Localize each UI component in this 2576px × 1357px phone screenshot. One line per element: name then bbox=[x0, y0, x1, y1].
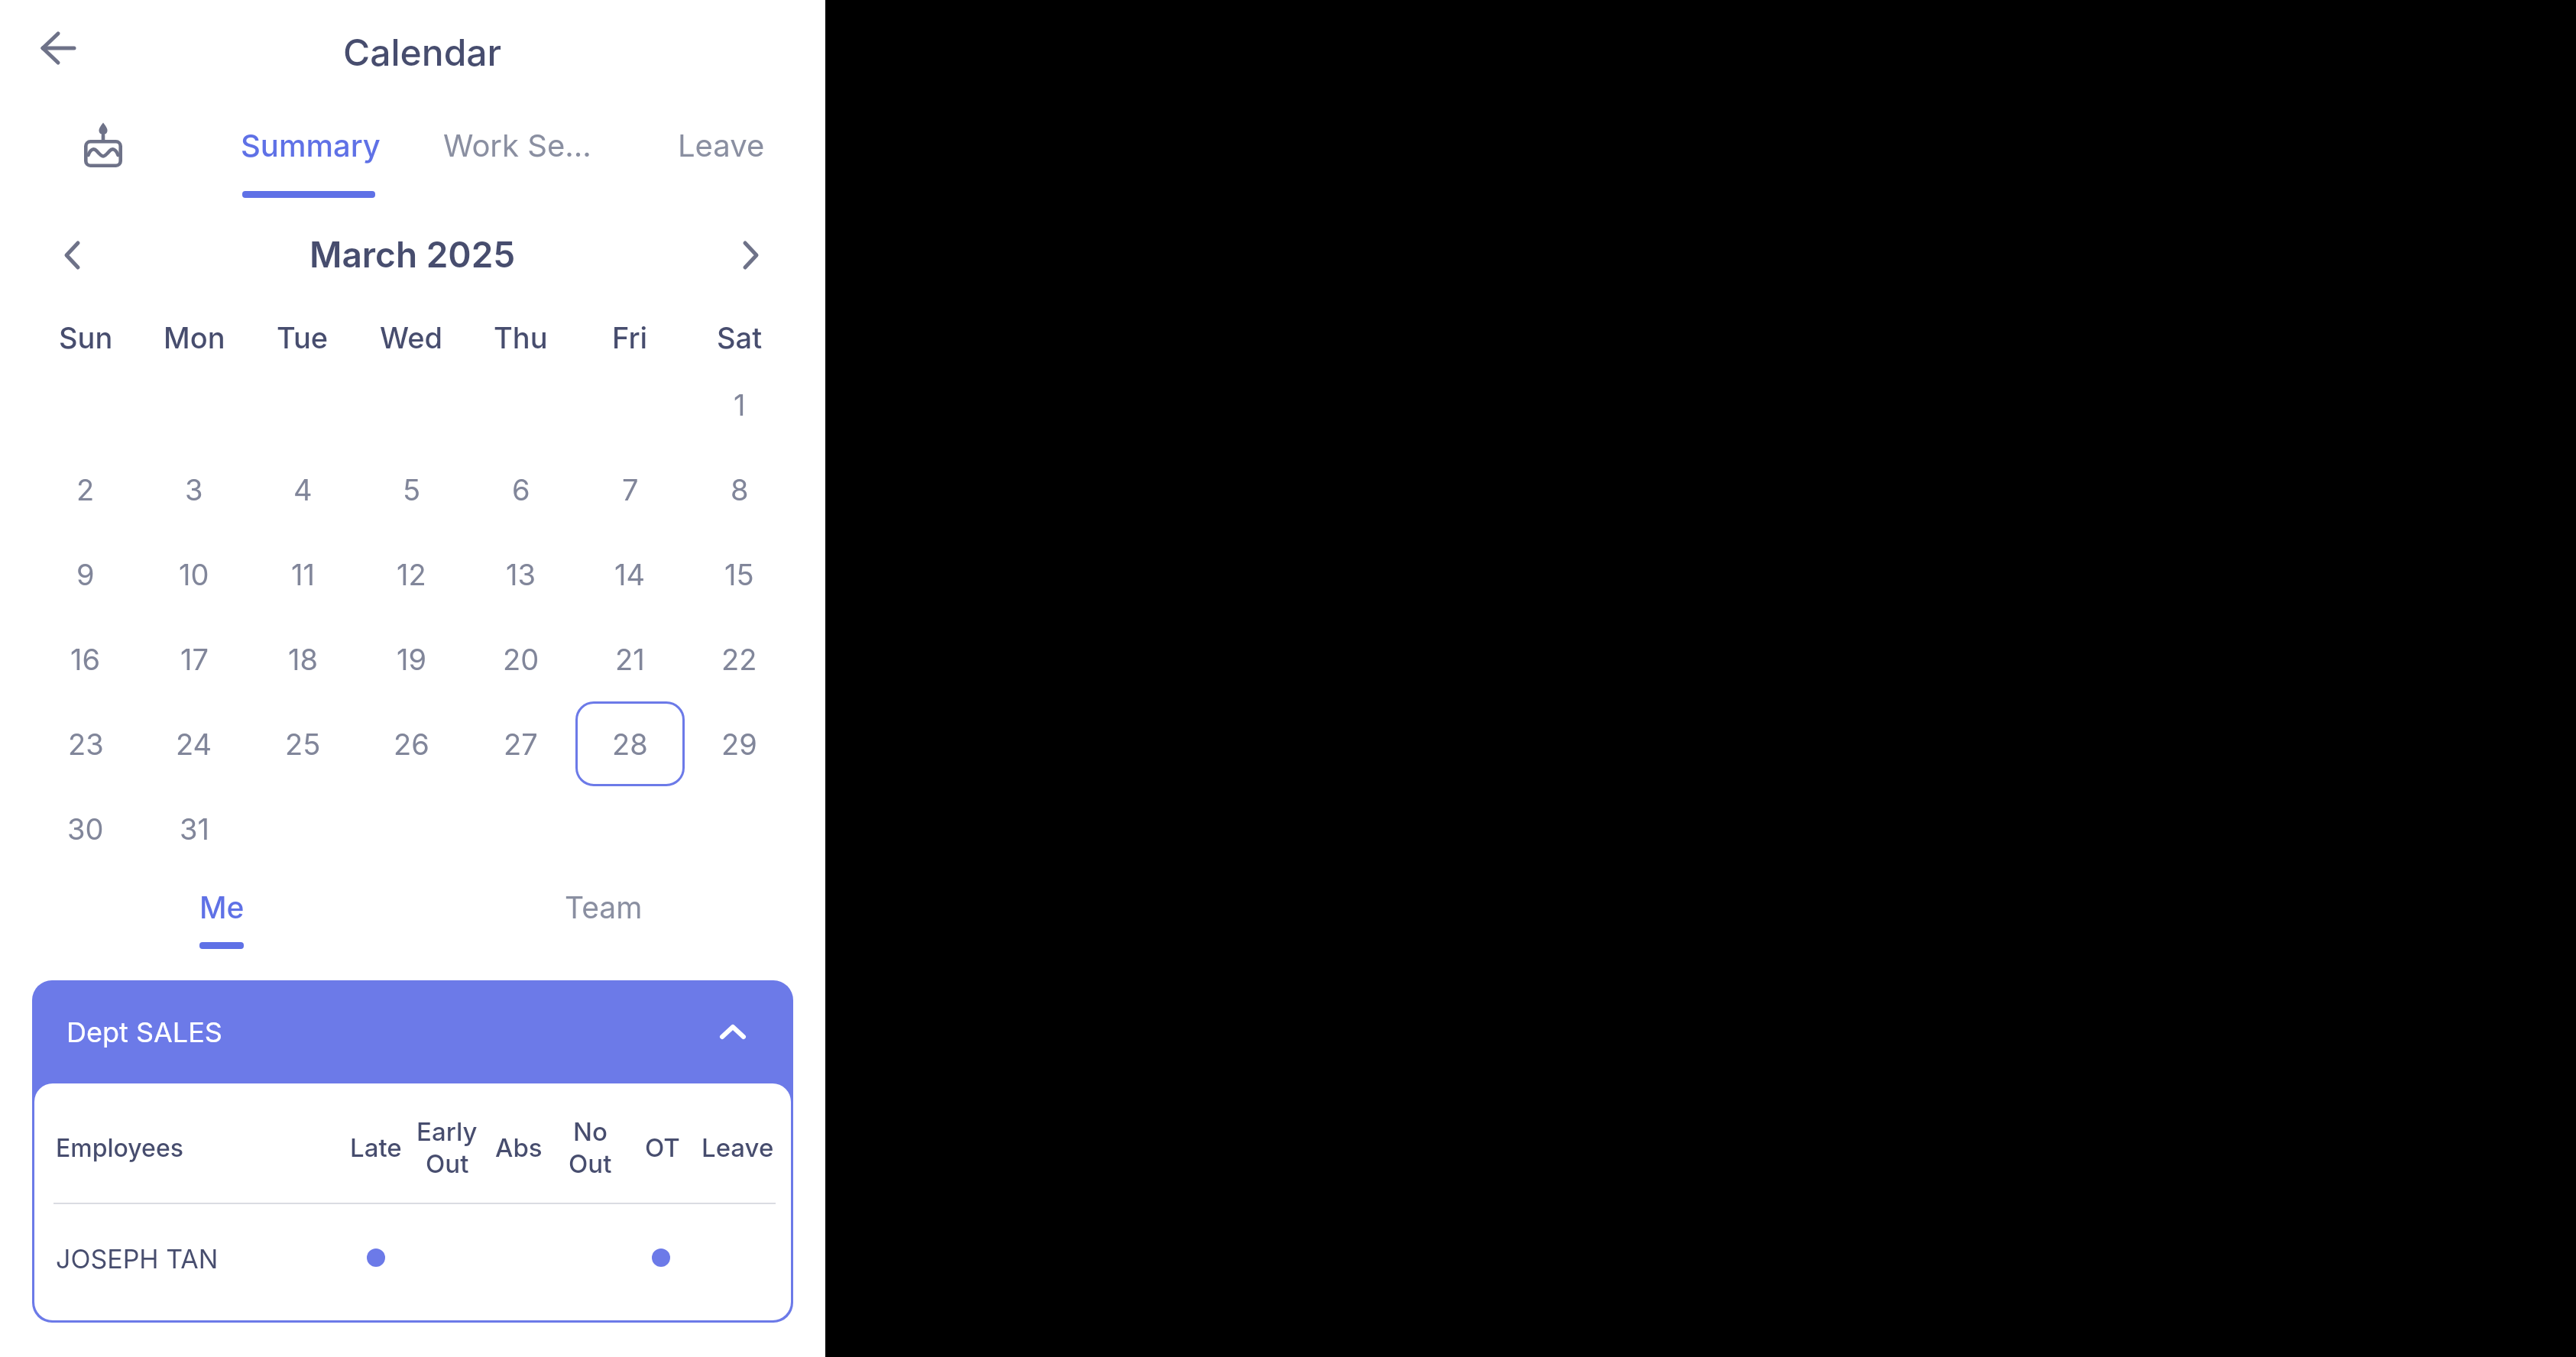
button[interactable]: 11 bbox=[248, 532, 357, 617]
button[interactable]: Team bbox=[508, 884, 699, 930]
staticText: Leave bbox=[702, 1132, 774, 1163]
button[interactable]: 29 bbox=[685, 701, 794, 786]
staticText: 12 bbox=[397, 557, 426, 592]
button[interactable] bbox=[49, 232, 95, 278]
staticText: 13 bbox=[506, 557, 536, 592]
staticText: 27 bbox=[504, 727, 538, 762]
button[interactable]: 21 bbox=[575, 617, 685, 701]
staticText: 30 bbox=[67, 811, 104, 847]
staticText: 20 bbox=[503, 642, 540, 677]
button[interactable]: JOSEPH TAN bbox=[37, 1223, 789, 1295]
staticText: 21 bbox=[615, 642, 645, 677]
button[interactable]: 24 bbox=[140, 701, 248, 786]
staticText: 1 bbox=[734, 387, 746, 423]
button[interactable]: 13 bbox=[466, 532, 575, 617]
staticText: 24 bbox=[176, 727, 212, 762]
staticText: OT bbox=[645, 1132, 680, 1163]
button[interactable]: Summary bbox=[207, 122, 413, 168]
button[interactable]: Leave bbox=[618, 122, 825, 168]
staticText: 29 bbox=[721, 727, 757, 762]
staticText: 25 bbox=[285, 727, 321, 762]
staticText: Me bbox=[199, 889, 245, 925]
staticText: 11 bbox=[291, 557, 315, 592]
staticText: March 2025 bbox=[309, 233, 516, 276]
button[interactable]: 26 bbox=[357, 701, 466, 786]
button[interactable]: 12 bbox=[357, 532, 466, 617]
button[interactable]: Dept SALES bbox=[32, 980, 793, 1083]
staticText: 9 bbox=[76, 557, 95, 592]
staticText: 28 bbox=[612, 727, 648, 762]
button[interactable]: 7 bbox=[575, 447, 685, 532]
staticText: 22 bbox=[721, 642, 757, 677]
staticText: 19 bbox=[397, 642, 427, 677]
button[interactable]: 14 bbox=[575, 532, 685, 617]
staticText: 16 bbox=[70, 642, 101, 677]
staticText: Fri bbox=[612, 320, 648, 355]
staticText: No bbox=[573, 1116, 608, 1147]
button[interactable]: 3 bbox=[140, 447, 248, 532]
button[interactable]: 17 bbox=[140, 617, 248, 701]
button[interactable]: 27 bbox=[466, 701, 575, 786]
staticText: Sun bbox=[59, 320, 113, 355]
staticText: Employees bbox=[56, 1133, 183, 1163]
button[interactable]: Me bbox=[126, 884, 317, 930]
button[interactable]: Work Se... bbox=[414, 122, 621, 168]
button[interactable]: 23 bbox=[31, 701, 140, 786]
button[interactable] bbox=[728, 232, 774, 278]
staticText: 8 bbox=[731, 472, 749, 507]
staticText: 23 bbox=[68, 727, 104, 762]
staticText: 7 bbox=[622, 472, 639, 507]
staticText: Abs bbox=[495, 1132, 543, 1163]
staticText: Sat bbox=[717, 320, 763, 355]
button[interactable]: 4 bbox=[248, 447, 357, 532]
button[interactable] bbox=[34, 25, 83, 71]
staticText: 26 bbox=[394, 727, 429, 762]
staticText: Dept SALES bbox=[66, 1015, 222, 1049]
staticText: Calendar bbox=[343, 30, 502, 74]
staticText: Work Se... bbox=[443, 127, 591, 164]
button[interactable]: 5 bbox=[357, 447, 466, 532]
button[interactable]: 15 bbox=[685, 532, 794, 617]
button[interactable]: 16 bbox=[31, 617, 140, 701]
staticText: Out bbox=[569, 1148, 612, 1179]
button[interactable]: 30 bbox=[31, 786, 140, 871]
staticText: Tue bbox=[277, 320, 329, 355]
button[interactable]: 20 bbox=[466, 617, 575, 701]
staticText: JOSEPH TAN bbox=[56, 1243, 219, 1274]
staticText: 3 bbox=[185, 472, 203, 507]
button[interactable]: 10 bbox=[140, 532, 248, 617]
button[interactable]: 6 bbox=[466, 447, 575, 532]
button[interactable]: 22 bbox=[685, 617, 794, 701]
staticText: Team bbox=[565, 889, 643, 925]
button[interactable]: 31 bbox=[140, 786, 248, 871]
staticText: Early bbox=[416, 1116, 478, 1147]
staticText: 31 bbox=[180, 811, 209, 847]
button[interactable]: 1 bbox=[685, 362, 794, 447]
button[interactable]: 9 bbox=[31, 532, 140, 617]
button[interactable]: 18 bbox=[248, 617, 357, 701]
staticText: 18 bbox=[288, 642, 318, 677]
staticText: Thu bbox=[494, 320, 548, 355]
staticText: 2 bbox=[76, 472, 95, 507]
staticText: 14 bbox=[614, 557, 646, 592]
button[interactable] bbox=[71, 111, 135, 178]
staticText: 10 bbox=[179, 557, 209, 592]
staticText: Wed bbox=[380, 320, 443, 355]
staticText: 5 bbox=[403, 472, 421, 507]
button[interactable]: 8 bbox=[685, 447, 794, 532]
staticText: Leave bbox=[678, 127, 765, 164]
staticText: Mon bbox=[164, 320, 225, 355]
staticText: Late bbox=[350, 1132, 402, 1163]
button[interactable]: 19 bbox=[357, 617, 466, 701]
button[interactable]: 25 bbox=[248, 701, 357, 786]
staticText: Out bbox=[426, 1148, 469, 1179]
button[interactable]: 2 bbox=[31, 447, 140, 532]
staticText: 4 bbox=[293, 472, 313, 507]
staticText: Summary bbox=[241, 127, 381, 164]
staticText: 15 bbox=[724, 557, 754, 592]
staticText: 6 bbox=[512, 472, 530, 507]
button[interactable]: 28 bbox=[575, 701, 685, 786]
staticText: 17 bbox=[180, 642, 209, 677]
